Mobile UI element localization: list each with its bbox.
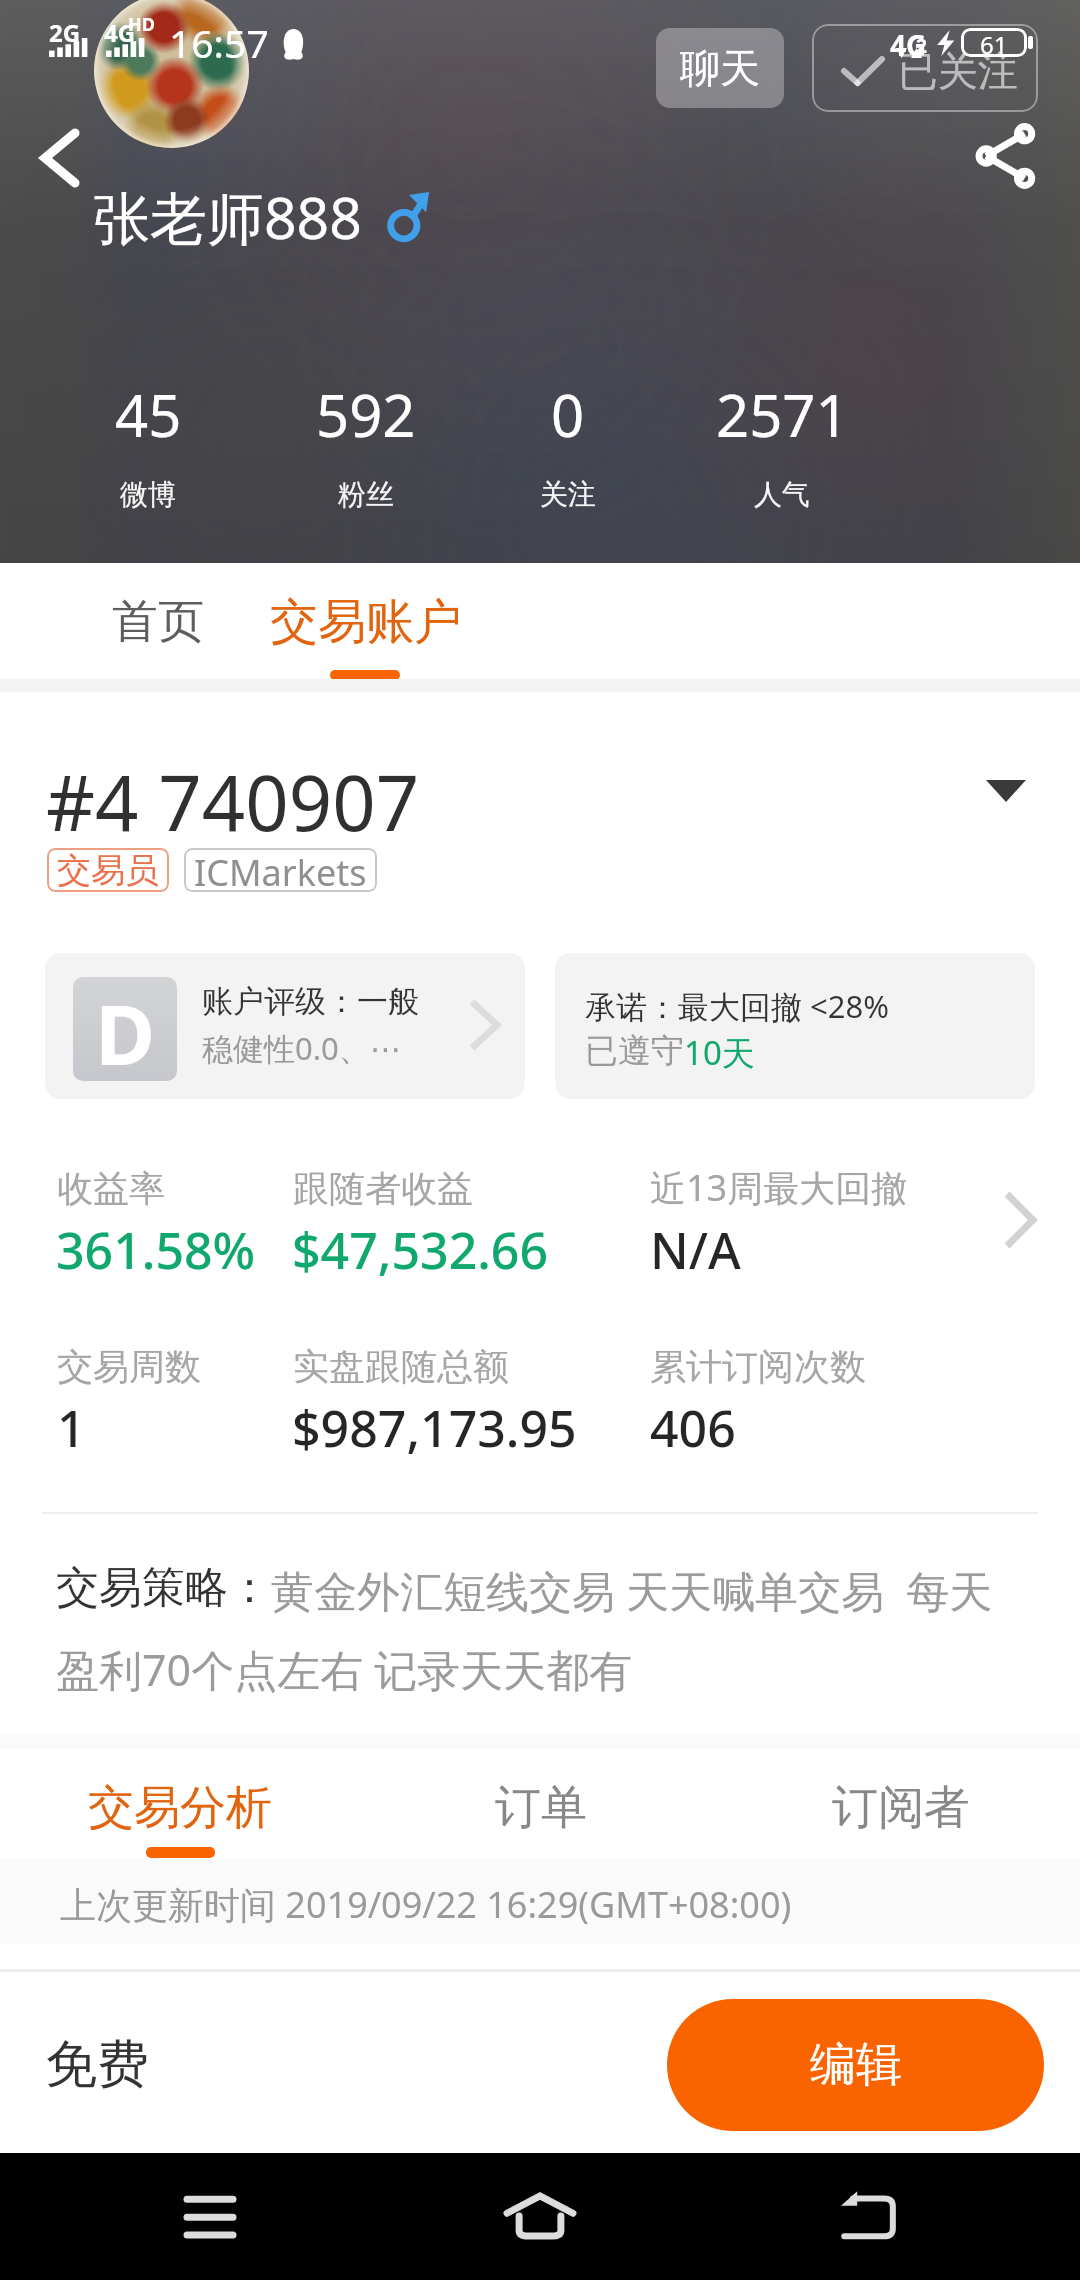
staticText: 稳健性0.0、⋯ [202,1027,401,1069]
staticText: 免费 [45,2032,149,2098]
staticText: HD [128,12,155,37]
staticText: 交易分析 [88,1779,272,1837]
staticText: 编辑 [810,2036,902,2094]
button[interactable]: Back [818,2176,918,2256]
button[interactable]: 交易账户 [270,582,458,662]
staticText: 361.58% [56,1216,256,1284]
staticText: 406 [650,1394,736,1462]
staticText: 人气 [754,477,810,512]
staticText: 已遵守 [585,1030,684,1072]
staticText: 承诺：最大回撤 <28% [585,985,890,1027]
staticText: 4G [890,26,927,64]
staticText: 聊天 [680,43,760,93]
staticText: 45 [115,375,182,454]
staticText: 收益率 [57,1166,165,1211]
button[interactable]: 订单 [451,1770,631,1846]
staticText: ICMarkets [194,848,367,892]
staticText: 关注 [540,477,596,512]
staticText: 交易策略： [56,1561,271,1615]
staticText: 2571 [716,375,849,454]
staticText: 592 [316,375,416,454]
button[interactable]: 交易分析 [85,1770,275,1846]
staticText: 微博 [120,477,176,512]
staticText: 交易员 [57,849,159,892]
staticText: 跟随者收益 [293,1166,473,1211]
staticText: 已关注 [898,46,1018,96]
button[interactable]: Home [490,2176,590,2256]
staticText: D [95,977,156,1081]
staticText: 累计订阅次数 [650,1344,866,1389]
staticText: 10天 [684,1030,755,1075]
button[interactable]: Switch account [958,743,1054,839]
staticText: 近13周最大回撤 [650,1163,908,1212]
button[interactable]: More statistics [975,1175,1065,1265]
staticText: 2G [49,16,81,49]
button[interactable]: 编辑 [667,1999,1044,2131]
staticText: $987,173.95 [292,1394,577,1462]
staticText: 盈利70个点左右 记录天天都有 [56,1640,633,1699]
staticText: 1 [57,1394,86,1462]
staticText: 上次更新时间 2019/09/22 16:29(GMT+08:00) [60,1880,792,1929]
staticText: 2 [916,33,927,59]
button[interactable]: 聊天 [656,28,784,108]
button[interactable]: Share [958,108,1054,204]
button[interactable]: D [45,953,525,1099]
staticText: 黄金外汇短线交易 天天喊单交易 每天 [271,1561,993,1620]
button[interactable]: 订阅者 [831,1770,971,1846]
staticText: 0 [551,375,585,454]
staticText: 账户评级：一般 [202,982,419,1021]
staticText: $47,532.66 [292,1216,549,1284]
staticText: 交易账户 [270,592,458,652]
staticText: 实盘跟随总额 [293,1344,509,1389]
button[interactable]: 首页 [93,582,223,662]
staticText: #4 740907 [46,750,420,854]
staticText: 张老师888 [93,178,362,256]
staticText: 交易周数 [57,1344,201,1389]
staticText: 61 [980,28,1008,57]
staticText: 16:57 [169,16,269,69]
staticText: 粉丝 [338,477,394,512]
staticText: 订单 [495,1779,587,1837]
staticText: 4G [104,16,136,49]
button[interactable]: 承诺：最大回撤 <28% [555,953,1035,1099]
button[interactable]: Recent apps [160,2176,260,2256]
button[interactable]: Back [14,110,106,206]
staticText: 订阅者 [832,1779,970,1837]
staticText: 首页 [112,593,204,651]
button[interactable]: 已关注 [812,24,1038,112]
staticText: N/A [650,1216,741,1284]
